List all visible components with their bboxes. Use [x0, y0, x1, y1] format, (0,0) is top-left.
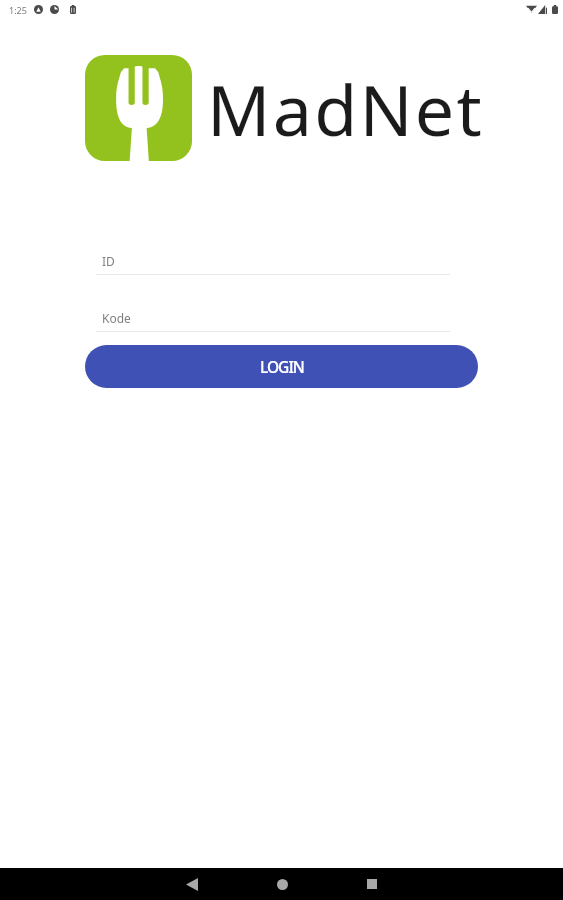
button[interactable]: Kode: [96, 305, 450, 332]
button[interactable]: Recent apps: [327, 868, 417, 900]
button[interactable]: Back: [147, 868, 237, 900]
button[interactable]: Home: [237, 868, 327, 900]
staticText: Kode: [102, 310, 131, 326]
staticText: 1:25: [9, 4, 27, 16]
button[interactable]: ID: [96, 248, 450, 275]
staticText: ID: [102, 253, 115, 269]
staticText: MadNet: [207, 61, 484, 156]
staticText: LOGIN: [260, 356, 304, 377]
button[interactable]: LOGIN: [85, 345, 478, 388]
